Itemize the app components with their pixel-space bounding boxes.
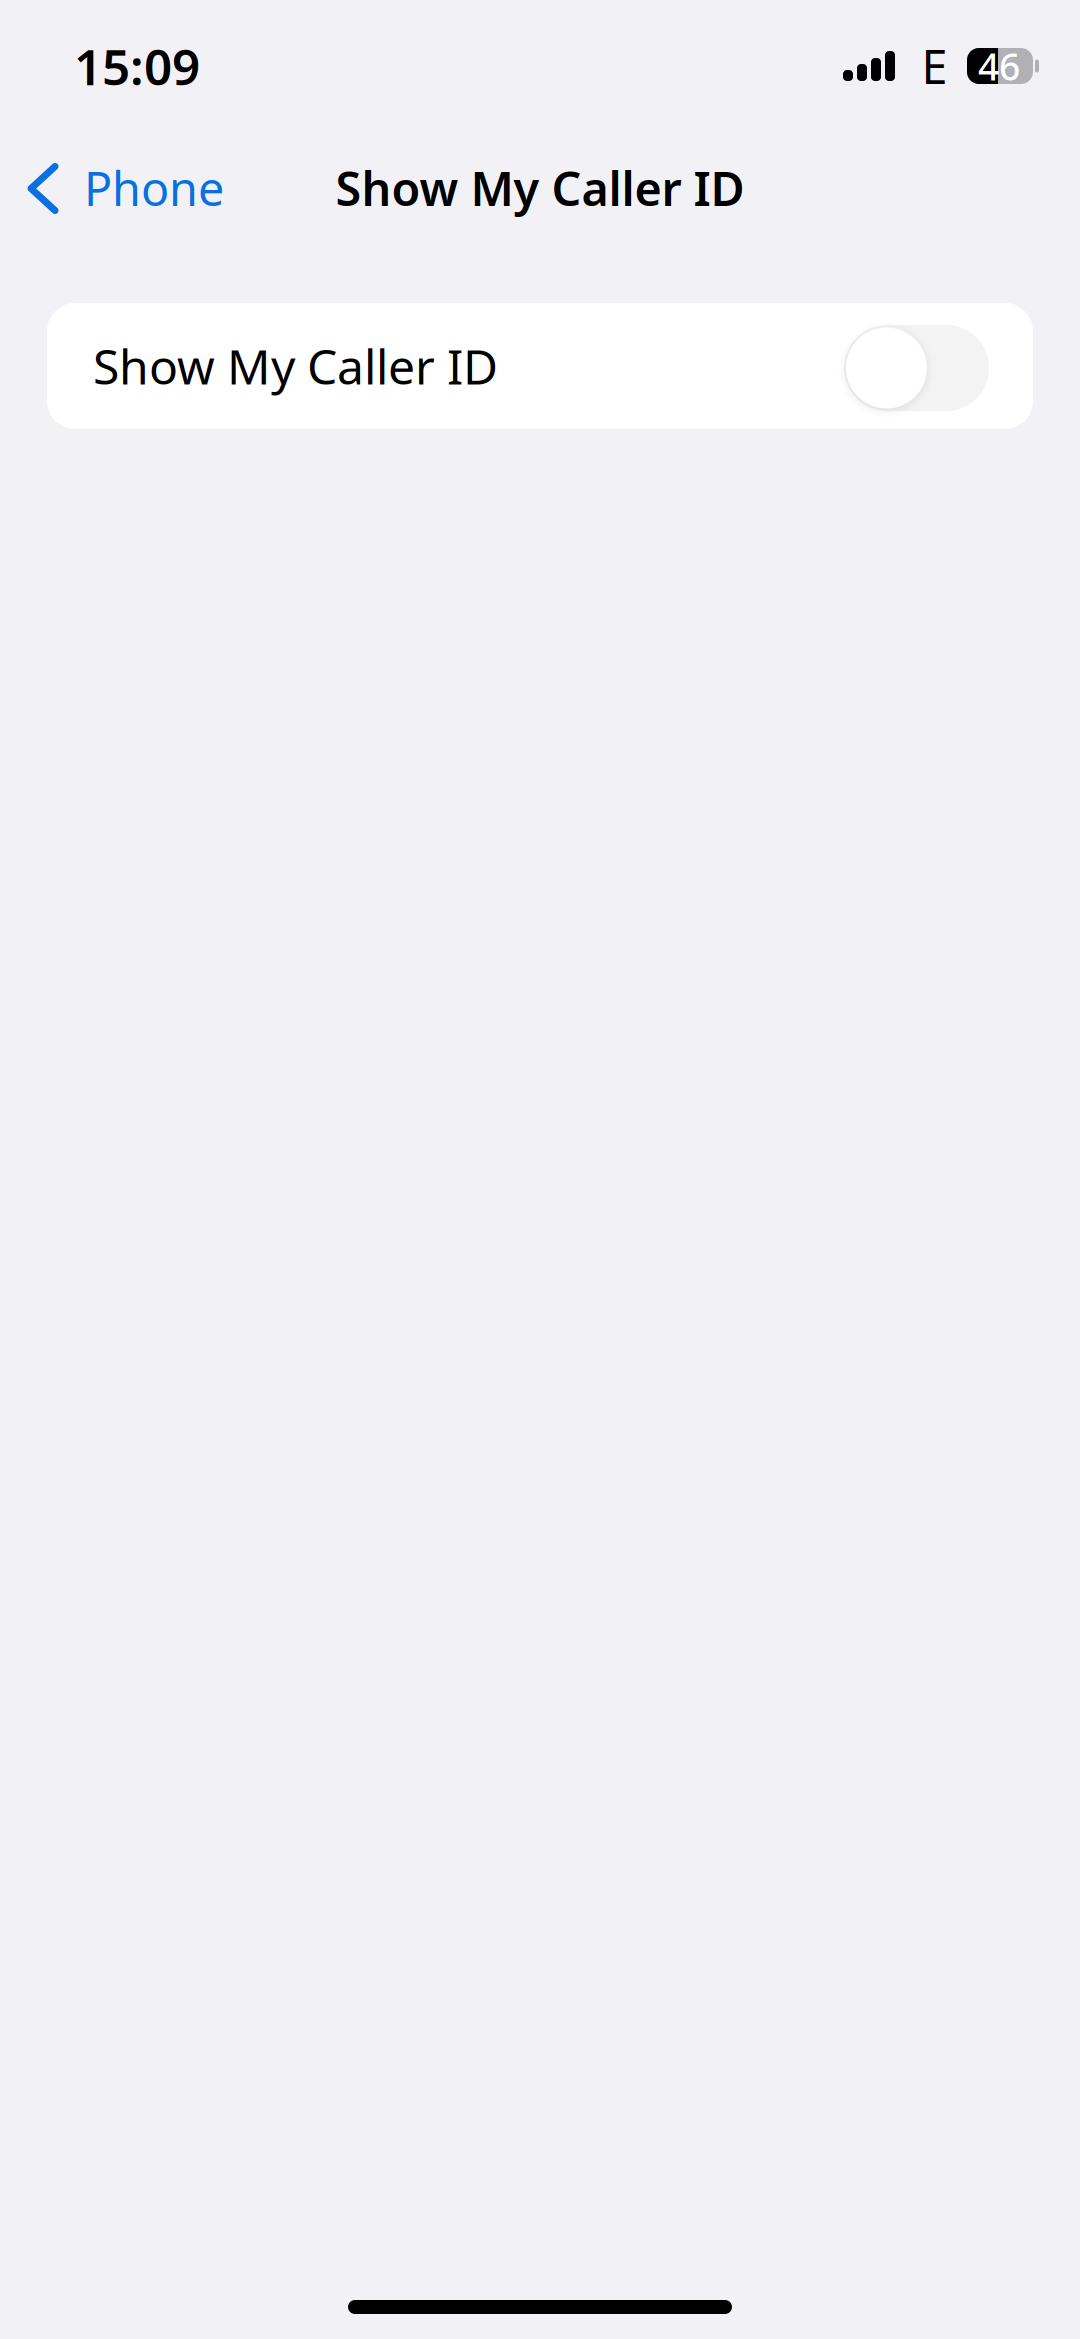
staticText: Phone xyxy=(84,157,224,219)
staticText: Show My Caller ID xyxy=(93,334,498,398)
button[interactable]: Show My Caller ID xyxy=(47,303,1033,429)
staticText: E xyxy=(921,35,947,97)
staticText: Show My Caller ID xyxy=(335,157,744,219)
staticText: 46 xyxy=(978,41,1020,91)
staticText: 15:09 xyxy=(74,33,200,99)
button[interactable]: Back to Phone xyxy=(0,132,244,244)
button[interactable]: Show My Caller ID xyxy=(844,321,989,411)
